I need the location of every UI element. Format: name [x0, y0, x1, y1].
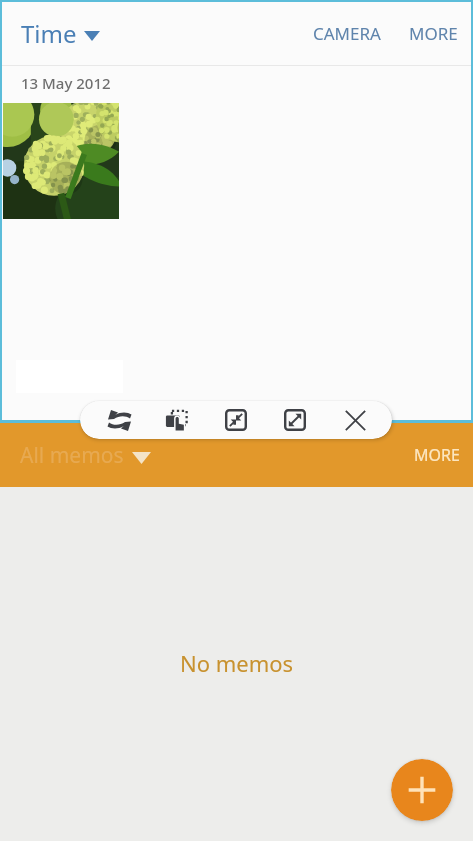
- button[interactable]: Create memo: [391, 759, 453, 821]
- button[interactable]: Expand window: [276, 401, 314, 439]
- staticText: MORE: [409, 22, 458, 45]
- button[interactable]: Close: [336, 401, 374, 439]
- button[interactable]: Drag and drop: [157, 401, 195, 439]
- staticText: CAMERA: [313, 22, 381, 45]
- button[interactable]: CAMERA: [304, 12, 390, 55]
- staticText: MORE: [414, 444, 460, 466]
- button[interactable]: All memos: [0, 433, 171, 478]
- button[interactable]: Swap windows: [100, 401, 138, 439]
- button[interactable]: Shrink window: [217, 401, 255, 439]
- button[interactable]: Time: [2, 9, 114, 58]
- staticText: 13 May 2012: [21, 73, 111, 93]
- staticText: Time: [21, 17, 77, 50]
- staticText: All memos: [20, 441, 124, 470]
- button[interactable]: MORE: [401, 434, 473, 476]
- button[interactable]: MORE: [400, 12, 467, 55]
- staticText: No memos: [180, 648, 294, 678]
